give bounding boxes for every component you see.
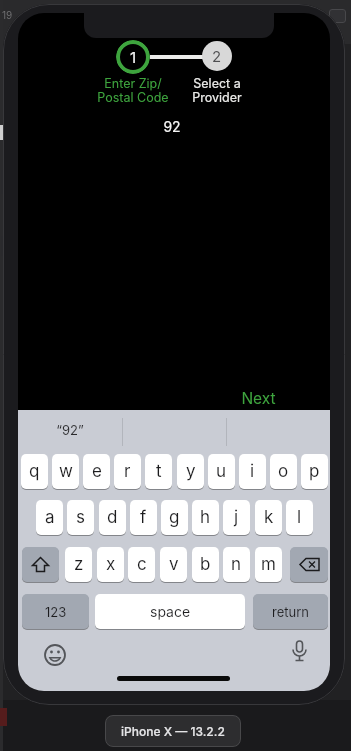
staticText: 19 bbox=[2, 9, 13, 21]
staticText: a bbox=[45, 507, 55, 528]
staticText: k bbox=[264, 507, 274, 528]
button[interactable]: w bbox=[52, 454, 79, 489]
button[interactable] bbox=[44, 644, 66, 666]
button[interactable]: s bbox=[67, 500, 94, 535]
staticText: y bbox=[186, 461, 196, 482]
staticText: m bbox=[261, 554, 276, 575]
button[interactable] bbox=[290, 547, 328, 582]
staticText: q bbox=[29, 461, 40, 482]
staticText: iPhone X — 13.2.2 bbox=[121, 724, 225, 739]
button[interactable]: o bbox=[270, 454, 297, 489]
staticText: v bbox=[169, 554, 179, 575]
staticText: space bbox=[150, 603, 191, 620]
button[interactable]: r bbox=[114, 454, 141, 489]
button[interactable]: q bbox=[21, 454, 48, 489]
staticText: r bbox=[124, 461, 131, 482]
staticText: s bbox=[76, 507, 85, 528]
button[interactable]: e bbox=[83, 454, 110, 489]
button[interactable]: 123 bbox=[22, 594, 89, 629]
button[interactable]: d bbox=[99, 500, 126, 535]
staticText: d bbox=[107, 507, 118, 528]
button[interactable]: l bbox=[286, 500, 313, 535]
button[interactable]: c bbox=[128, 547, 155, 582]
staticText: x bbox=[106, 554, 116, 575]
button[interactable]: n bbox=[223, 547, 250, 582]
button[interactable]: space bbox=[95, 594, 245, 629]
staticText: u bbox=[216, 461, 227, 482]
staticText: z bbox=[74, 554, 84, 575]
button[interactable]: g bbox=[161, 500, 188, 535]
button[interactable]: z bbox=[65, 547, 92, 582]
staticText: o bbox=[278, 461, 289, 482]
button[interactable]: y bbox=[177, 454, 204, 489]
button[interactable] bbox=[289, 640, 310, 664]
staticText: Select a Provider bbox=[192, 76, 242, 105]
staticText: return bbox=[272, 604, 309, 620]
staticText: t bbox=[156, 461, 162, 482]
staticText: g bbox=[169, 507, 180, 528]
button[interactable]: i bbox=[239, 454, 266, 489]
staticText: 1 bbox=[130, 48, 137, 66]
button[interactable]: a bbox=[36, 500, 63, 535]
staticText: n bbox=[231, 554, 242, 575]
staticText: 92 bbox=[163, 118, 181, 135]
button[interactable]: k bbox=[255, 500, 282, 535]
staticText: f bbox=[140, 507, 147, 528]
button[interactable] bbox=[22, 547, 59, 582]
button[interactable]: t bbox=[145, 454, 172, 489]
staticText: e bbox=[92, 461, 102, 482]
button[interactable]: j bbox=[223, 500, 250, 535]
button[interactable]: u bbox=[208, 454, 235, 489]
staticText: 123 bbox=[45, 604, 67, 620]
button[interactable]: m bbox=[255, 547, 282, 582]
staticText: Enter Zip/ Postal Code bbox=[97, 76, 169, 105]
staticText: w bbox=[59, 461, 73, 482]
button[interactable]: h bbox=[192, 500, 219, 535]
staticText: j bbox=[234, 507, 239, 528]
staticText: l bbox=[297, 507, 302, 528]
staticText: “92” bbox=[56, 422, 84, 438]
staticText: Next bbox=[241, 389, 276, 408]
button[interactable]: x bbox=[97, 547, 124, 582]
staticText: b bbox=[200, 554, 211, 575]
staticText: 2 bbox=[212, 47, 222, 65]
staticText: i bbox=[250, 461, 255, 482]
button[interactable]: 2 bbox=[202, 41, 232, 71]
button[interactable]: 1 bbox=[116, 40, 150, 74]
staticText: c bbox=[137, 554, 147, 575]
button[interactable]: p bbox=[301, 454, 328, 489]
button[interactable]: f bbox=[130, 500, 157, 535]
button[interactable]: return bbox=[253, 594, 328, 629]
button[interactable]: Next bbox=[223, 389, 293, 408]
button[interactable]: b bbox=[192, 547, 219, 582]
staticText: p bbox=[309, 461, 320, 482]
button[interactable]: v bbox=[160, 547, 187, 582]
staticText: h bbox=[200, 507, 211, 528]
